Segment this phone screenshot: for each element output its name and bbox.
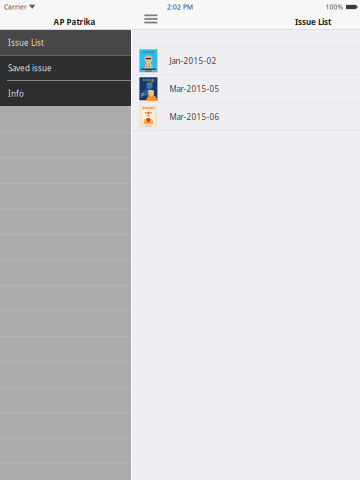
staticText: AP Patrika bbox=[53, 17, 95, 27]
button[interactable]: Menu bbox=[141, 11, 160, 26]
button[interactable]: Jan-2015-02 bbox=[132, 47, 360, 75]
staticText: Carrier bbox=[4, 3, 27, 11]
button[interactable]: Saved issue bbox=[0, 55, 131, 81]
button[interactable]: Info bbox=[0, 81, 131, 106]
staticText: 100% bbox=[325, 3, 343, 11]
staticText: Info bbox=[8, 88, 24, 99]
staticText: Mar-2015-06 bbox=[169, 111, 219, 122]
button[interactable]: Issue List bbox=[0, 30, 131, 55]
button[interactable]: Mar-2015-05 bbox=[132, 75, 360, 103]
staticText: Mar-2015-05 bbox=[169, 83, 219, 94]
staticText: Jan-2015-02 bbox=[169, 55, 216, 66]
staticText: Issue List bbox=[295, 17, 331, 27]
staticText: Issue List bbox=[8, 37, 44, 48]
button[interactable]: Mar-2015-06 bbox=[132, 103, 360, 131]
staticText: Saved issue bbox=[8, 63, 52, 73]
staticText: 2:02 PM bbox=[167, 3, 193, 11]
